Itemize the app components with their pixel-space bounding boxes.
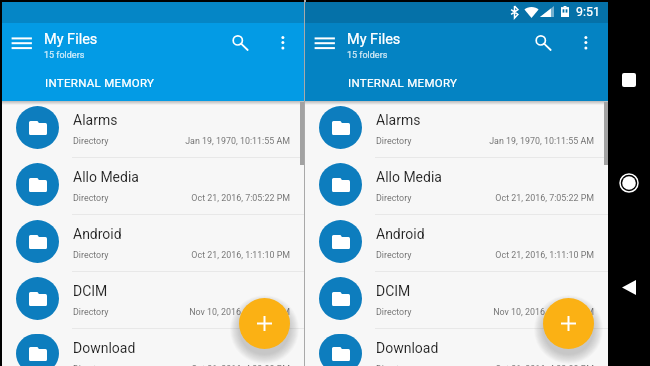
button[interactable]: Android	[2, 215, 304, 272]
button[interactable]: Download	[2, 329, 304, 366]
staticText: Oct 21, 2016, 4:22:00 PM	[305, 364, 594, 366]
staticText: DCIM	[73, 283, 108, 299]
staticText: Oct 21, 2016, 7:05:22 PM	[305, 193, 594, 203]
staticText: Directory	[376, 250, 412, 260]
staticText: Directory	[73, 136, 109, 146]
staticText: Directory	[73, 193, 109, 203]
button[interactable]: DCIM	[305, 272, 608, 329]
button[interactable]: More options	[273, 32, 297, 56]
staticText: Directory	[376, 364, 412, 366]
staticText: 15 folders	[44, 50, 85, 61]
staticText: Android	[73, 226, 122, 242]
staticText: Nov 10, 2016, 9:15:34 AM	[305, 307, 594, 317]
button[interactable]: Search	[531, 30, 557, 56]
button[interactable]: Download	[305, 329, 608, 366]
staticText: Oct 21, 2016, 1:11:10 PM	[2, 250, 290, 260]
button[interactable]: Alarms	[2, 101, 304, 158]
staticText: My Files	[44, 31, 98, 48]
button[interactable]: Allo Media	[2, 158, 304, 215]
button[interactable]: More options	[576, 32, 600, 56]
staticText: Allo Media	[376, 169, 442, 185]
staticText: Alarms	[73, 112, 118, 128]
staticText: 9:51	[576, 4, 600, 19]
staticText: Download	[73, 340, 136, 356]
button[interactable]: Navigation drawer	[6, 32, 42, 58]
staticText: Directory	[376, 307, 412, 317]
staticText: Nov 10, 2016, 9:15:34 AM	[2, 307, 290, 317]
staticText: Directory	[73, 250, 109, 260]
button[interactable]: DCIM	[2, 272, 304, 329]
staticText: Allo Media	[73, 169, 139, 185]
button[interactable]: Allo Media	[305, 158, 608, 215]
staticText: Alarms	[376, 112, 421, 128]
staticText: Jan 19, 1970, 10:11:55 AM	[305, 136, 594, 146]
staticText: Oct 21, 2016, 7:05:22 PM	[2, 193, 290, 203]
staticText: 15 folders	[347, 50, 388, 61]
staticText: Directory	[73, 307, 109, 317]
button[interactable]: Search	[228, 30, 254, 56]
staticText: Jan 19, 1970, 10:11:55 AM	[2, 136, 290, 146]
staticText: Directory	[376, 193, 412, 203]
button[interactable]: Add	[543, 298, 594, 349]
button[interactable]: Android	[305, 215, 608, 272]
button[interactable]: Add	[239, 298, 290, 349]
staticText: My Files	[347, 31, 401, 48]
staticText: Directory	[376, 136, 412, 146]
staticText: Download	[376, 340, 439, 356]
staticText: Android	[376, 226, 425, 242]
button[interactable]: Recents	[615, 66, 643, 94]
staticText: INTERNAL MEMORY	[348, 76, 458, 89]
staticText: INTERNAL MEMORY	[45, 76, 155, 89]
button[interactable]: INTERNAL MEMORY	[335, 67, 471, 98]
button[interactable]: Home	[615, 169, 643, 197]
button[interactable]: Navigation drawer	[309, 32, 345, 58]
staticText: Directory	[73, 364, 109, 366]
staticText: DCIM	[376, 283, 411, 299]
button[interactable]: Alarms	[305, 101, 608, 158]
button[interactable]: INTERNAL MEMORY	[32, 67, 168, 98]
staticText: Oct 21, 2016, 4:22:00 PM	[2, 364, 290, 366]
button[interactable]: Back	[615, 273, 643, 301]
staticText: Oct 21, 2016, 1:11:10 PM	[305, 250, 594, 260]
